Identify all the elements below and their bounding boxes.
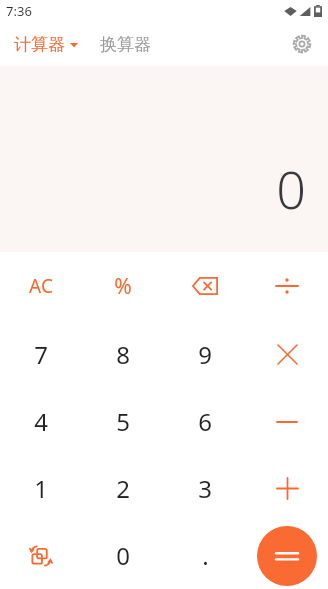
button[interactable]: 0	[82, 522, 164, 589]
button[interactable]: 5	[82, 388, 164, 455]
button[interactable]: 计算器	[12, 30, 80, 59]
staticText: 5	[116, 405, 130, 438]
button[interactable]: AC	[0, 252, 82, 320]
button[interactable]: 6	[164, 388, 246, 455]
button[interactable]: 8	[82, 320, 164, 388]
staticText: 换算器	[100, 34, 151, 55]
button[interactable]: Plus	[246, 455, 328, 522]
staticText: 1	[34, 472, 48, 505]
staticText: AC	[29, 273, 53, 299]
staticText: 计算器	[14, 34, 65, 55]
button[interactable]: Multiply	[246, 320, 328, 388]
staticText: 0	[116, 539, 130, 572]
button[interactable]: Convert	[0, 522, 82, 589]
staticText: 8	[116, 338, 130, 371]
button[interactable]: Equals	[257, 526, 317, 586]
button[interactable]: Settings	[284, 26, 320, 62]
button[interactable]: .	[164, 522, 246, 589]
staticText: 3	[198, 472, 212, 505]
button[interactable]: %	[82, 252, 164, 320]
staticText: 2	[116, 472, 130, 505]
button[interactable]: 7	[0, 320, 82, 388]
staticText: 7	[34, 338, 48, 371]
button[interactable]: Backspace	[164, 252, 246, 320]
staticText: 4	[34, 405, 48, 438]
button[interactable]: Minus	[246, 388, 328, 455]
staticText: 7:36	[6, 2, 32, 20]
button[interactable]: 换算器	[98, 30, 153, 59]
button[interactable]: 2	[82, 455, 164, 522]
staticText: %	[114, 272, 132, 301]
button[interactable]	[246, 252, 328, 320]
staticText: 9	[198, 338, 212, 371]
button[interactable]: 3	[164, 455, 246, 522]
button[interactable]: 1	[0, 455, 82, 522]
staticText: .	[202, 539, 209, 572]
button[interactable]: 4	[0, 388, 82, 455]
staticText: 6	[198, 405, 212, 438]
staticText: 0	[276, 153, 306, 224]
button[interactable]: 9	[164, 320, 246, 388]
